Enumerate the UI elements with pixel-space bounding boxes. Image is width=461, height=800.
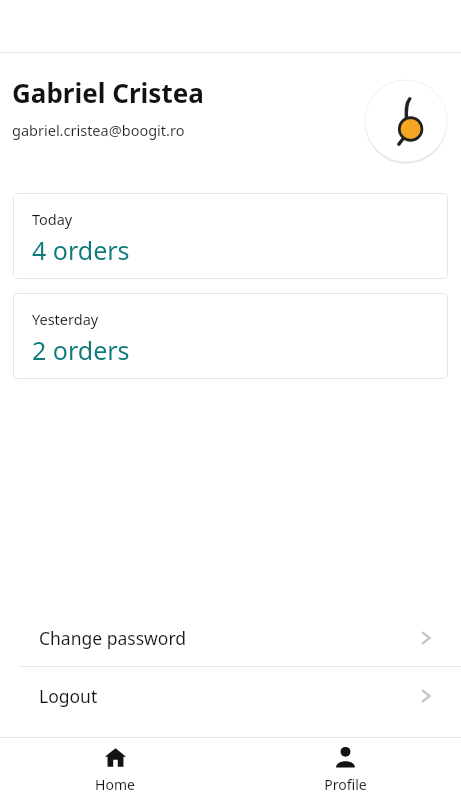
staticText: 2 orders bbox=[32, 333, 130, 367]
staticText: Today bbox=[32, 209, 73, 229]
button[interactable]: Today bbox=[13, 193, 448, 279]
button[interactable]: Home bbox=[0, 738, 230, 800]
staticText: gabriel.cristea@boogit.ro bbox=[12, 120, 185, 140]
button[interactable]: Change password bbox=[0, 609, 461, 666]
staticText: Profile bbox=[324, 775, 367, 794]
staticText: 4 orders bbox=[32, 233, 130, 267]
other: Profile photo bbox=[364, 79, 448, 163]
staticText: Home bbox=[95, 775, 135, 794]
staticText: Yesterday bbox=[32, 309, 99, 329]
button[interactable]: Logout bbox=[0, 667, 461, 724]
staticText: Logout bbox=[39, 684, 416, 708]
button[interactable]: Yesterday bbox=[13, 293, 448, 379]
staticText: Change password bbox=[39, 626, 416, 650]
staticText: Gabriel Cristea bbox=[12, 75, 204, 110]
button[interactable]: Profile bbox=[230, 738, 461, 800]
